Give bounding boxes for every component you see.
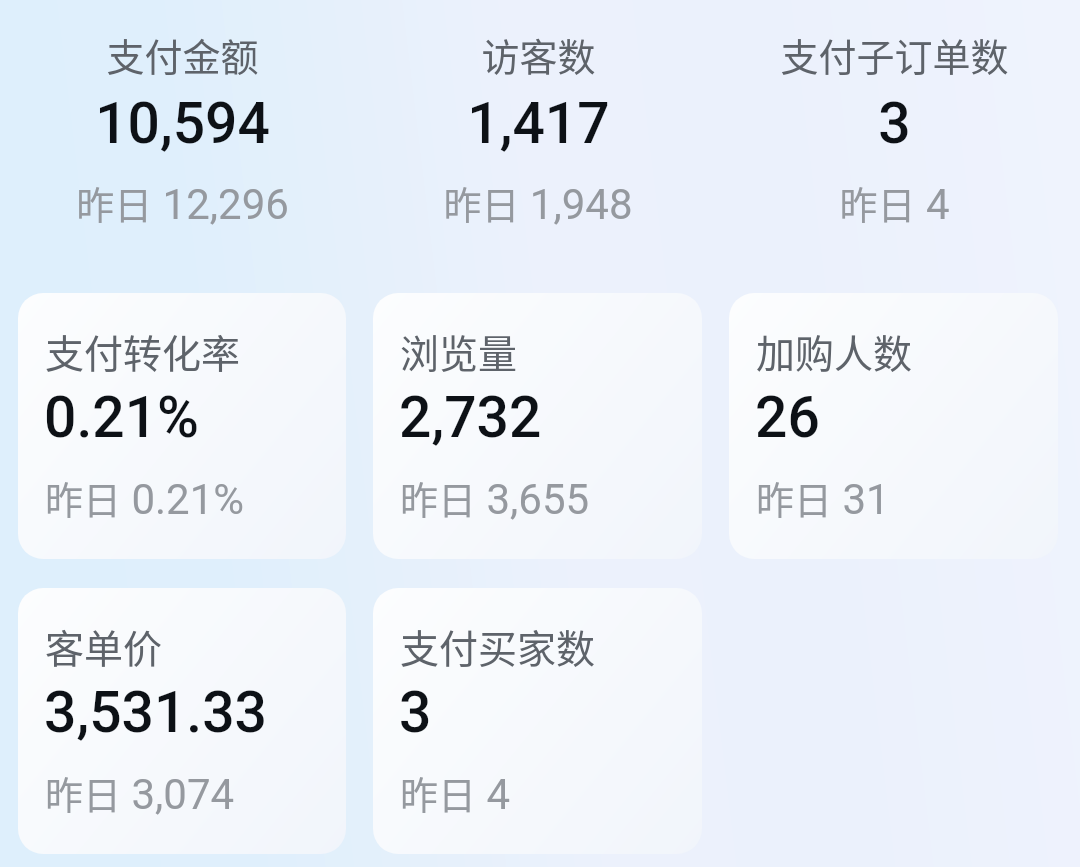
button[interactable]: 支付子订单数: [716, 0, 1072, 293]
staticText: 2,732: [399, 384, 542, 451]
staticText: 昨日 3,655: [400, 470, 590, 525]
staticText: 浏览量: [400, 323, 518, 379]
staticText: 加购人数: [756, 323, 913, 379]
staticText: 26: [755, 384, 820, 451]
staticText: 支付转化率: [45, 323, 241, 379]
staticText: 昨日 4: [400, 765, 511, 820]
staticText: 访客数: [481, 27, 596, 82]
staticText: 昨日 4: [839, 175, 950, 230]
staticText: 昨日 12,296: [76, 175, 289, 230]
staticText: 10,594: [95, 90, 270, 157]
staticText: 支付金额: [106, 27, 259, 82]
staticText: 昨日 31: [756, 470, 890, 525]
button[interactable]: 浏览量: [373, 293, 702, 559]
staticText: 支付子订单数: [780, 27, 1009, 82]
button[interactable]: 支付金额: [5, 0, 360, 293]
staticText: 昨日 0.21%: [45, 470, 245, 525]
staticText: 昨日 1,948: [443, 175, 633, 230]
staticText: 昨日 3,074: [45, 765, 235, 820]
button[interactable]: 支付买家数: [373, 588, 702, 854]
button[interactable]: 客单价: [18, 588, 346, 854]
staticText: 3: [878, 90, 911, 157]
staticText: 3,531.33: [44, 679, 267, 746]
button[interactable]: 加购人数: [729, 293, 1058, 559]
button[interactable]: 支付转化率: [18, 293, 346, 559]
staticText: 3: [399, 679, 432, 746]
staticText: 1,417: [467, 90, 610, 157]
staticText: 客单价: [45, 618, 163, 674]
staticText: 0.21%: [44, 384, 199, 451]
staticText: 支付买家数: [400, 618, 596, 674]
button[interactable]: 访客数: [360, 0, 716, 293]
